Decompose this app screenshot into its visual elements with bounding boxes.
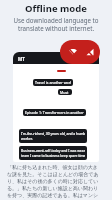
other: Mobile data off [86,48,94,56]
button[interactable]: Travel is another world [33,79,73,86]
button[interactable]: No connection [60,40,100,64]
staticText: Offline mode [0,2,112,15]
button[interactable]: Must [58,89,72,95]
staticText: Use downloaded language to translate wit… [0,16,112,32]
button[interactable]: Business-went-self-today and I was weari… [19,146,87,160]
button[interactable]: I'm-the-richest, 30 years old, and a hum… [19,129,87,143]
staticText: 「私に持ち込まれた時、彼女は顔の大きな謎を見た。そこはほとんどの場合であり、私は… [7,164,100,200]
staticText: Travel is another world [35,80,71,85]
staticText: I'm-the-richest, 30 years old, and a hum… [21,131,85,141]
staticText: Episode 1: Transformers in another world… [25,110,84,115]
staticText: Business-went-self-today and I was weari… [21,148,85,158]
button[interactable]: Episode 1: Transformers in another world… [23,109,86,116]
staticText: Must [60,90,69,95]
staticText: MT [18,56,25,62]
other: Wi-Fi off [69,48,77,56]
